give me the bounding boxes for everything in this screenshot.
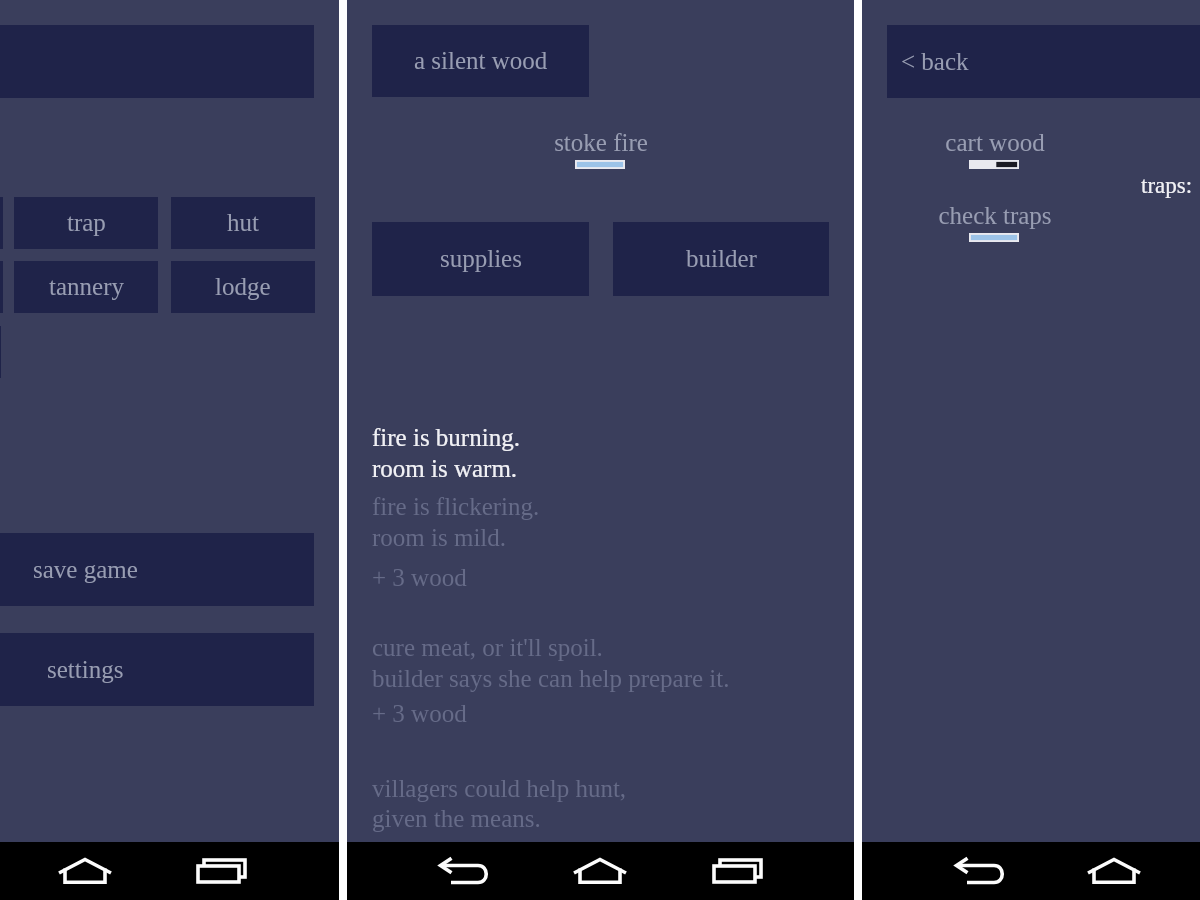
staticText: room is warm. <box>372 455 518 483</box>
staticText: fire is flickering. <box>372 493 540 521</box>
button[interactable]: cart wood <box>905 129 1085 171</box>
button[interactable]: a silent wood <box>372 25 589 97</box>
staticText: traps: <box>1141 173 1193 198</box>
button[interactable]: Home <box>1082 843 1146 889</box>
staticText: + 3 wood <box>372 564 467 592</box>
staticText: save game <box>33 556 138 584</box>
button[interactable]: hut <box>171 197 315 249</box>
staticText: fire is burning. <box>372 424 520 452</box>
staticText: given the means. <box>372 805 541 833</box>
button[interactable]: builder <box>613 222 829 296</box>
button[interactable]: Recent apps <box>190 843 254 889</box>
button[interactable]: Back <box>431 843 495 889</box>
staticText: check traps <box>905 202 1085 230</box>
staticText: trap <box>67 209 106 237</box>
button[interactable]: tannery <box>14 261 158 313</box>
staticText: lodge <box>215 273 271 301</box>
staticText: tannery <box>49 273 124 301</box>
staticText: + 3 wood <box>372 700 467 728</box>
button[interactable]: < back <box>887 25 1200 98</box>
button[interactable]: Back <box>947 843 1011 889</box>
button[interactable]: lodge <box>171 261 315 313</box>
button[interactable]: settings <box>0 633 314 706</box>
staticText: < back <box>901 48 969 76</box>
button[interactable]: check traps <box>905 202 1085 244</box>
button[interactable]: Recent apps <box>706 843 770 889</box>
staticText: hut <box>227 209 259 237</box>
button[interactable]: supplies <box>372 222 589 296</box>
staticText: cart wood <box>905 129 1085 157</box>
staticText: a silent wood <box>414 47 548 75</box>
staticText: settings <box>47 656 124 684</box>
staticText: supplies <box>440 245 522 273</box>
staticText: stoke fire <box>511 129 691 157</box>
button[interactable]: Home <box>53 843 117 889</box>
button[interactable]: trap <box>14 197 158 249</box>
staticText: room is mild. <box>372 524 507 552</box>
button[interactable]: save game <box>0 533 314 606</box>
staticText: villagers could help hunt, <box>372 775 627 803</box>
staticText: cure meat, or it'll spoil. <box>372 634 603 662</box>
staticText: builder <box>686 245 757 273</box>
button[interactable]: stoke fire <box>511 129 691 171</box>
button[interactable]: Home <box>568 843 632 889</box>
staticText: builder says she can help prepare it. <box>372 665 730 693</box>
